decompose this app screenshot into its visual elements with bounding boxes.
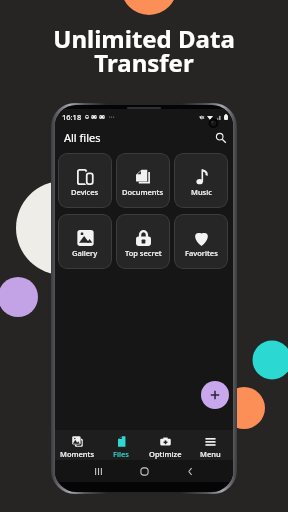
staticText: Moments bbox=[60, 449, 95, 459]
staticText: Favorites bbox=[185, 248, 218, 258]
staticText: Documents bbox=[122, 187, 164, 197]
button[interactable]: Menu bbox=[188, 430, 233, 460]
button[interactable]: Back bbox=[180, 461, 200, 481]
staticText: Optimize bbox=[149, 449, 182, 459]
button[interactable]: Files bbox=[99, 430, 143, 460]
staticText: Gallery bbox=[72, 248, 98, 258]
staticText: Menu bbox=[200, 449, 221, 459]
staticText: 16:18 bbox=[62, 112, 82, 122]
button[interactable]: Favorites bbox=[174, 214, 228, 269]
staticText: Music bbox=[191, 187, 212, 197]
button[interactable]: Music bbox=[174, 153, 228, 208]
button[interactable]: Top secret bbox=[116, 214, 170, 269]
staticText: Devices bbox=[71, 187, 99, 197]
button[interactable]: Gallery bbox=[58, 214, 112, 269]
staticText: Top secret bbox=[125, 248, 162, 258]
staticText: Unlimited Data Transfer bbox=[53, 22, 235, 79]
button[interactable]: Add bbox=[201, 381, 229, 409]
button[interactable]: Home bbox=[134, 461, 154, 481]
button[interactable]: Documents bbox=[116, 153, 170, 208]
staticText: All files bbox=[64, 130, 101, 145]
button[interactable]: Optimize bbox=[143, 430, 188, 460]
button[interactable]: Recents bbox=[88, 461, 108, 481]
button[interactable]: Devices bbox=[58, 153, 112, 208]
staticText: Files bbox=[113, 449, 129, 459]
button[interactable]: Moments bbox=[55, 430, 99, 460]
button[interactable]: Search bbox=[212, 129, 230, 147]
